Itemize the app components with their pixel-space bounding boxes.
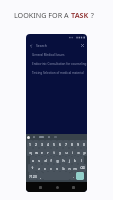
staticText: p [83, 150, 86, 155]
button[interactable]: o [75, 148, 81, 156]
button[interactable]: ⇧ [28, 164, 36, 172]
button[interactable]: b [60, 164, 66, 172]
staticText: y [59, 150, 61, 155]
button[interactable]: 7 [63, 140, 69, 148]
button[interactable]: n [66, 164, 72, 172]
staticText: 6 [59, 142, 61, 147]
button[interactable]: k [72, 156, 78, 164]
button[interactable]: a [30, 156, 36, 164]
button[interactable]: 8 [69, 140, 75, 148]
button[interactable]: 9 [75, 140, 81, 148]
staticText: 2 [35, 142, 37, 147]
staticText: m [73, 166, 77, 171]
staticText: , [40, 174, 41, 179]
button[interactable]: General Medical Issues [26, 50, 87, 59]
staticText: 9 [77, 142, 79, 147]
staticText: h [62, 158, 65, 163]
button[interactable]: 3 [39, 140, 45, 148]
staticText: ⌫ [80, 166, 85, 170]
staticText: Testing Selection of medical material [32, 71, 84, 75]
button[interactable]: v [54, 164, 60, 172]
button[interactable]: f [48, 156, 54, 164]
staticText: j [69, 158, 70, 163]
staticText: g [56, 158, 59, 163]
staticText: s [38, 158, 40, 163]
button[interactable]: Clear [80, 43, 85, 48]
button[interactable]: e [39, 148, 45, 156]
button[interactable]: Back [37, 184, 43, 190]
button[interactable]: c [48, 164, 54, 172]
button[interactable]: Back [28, 43, 34, 49]
button[interactable]: Home [54, 184, 60, 190]
button[interactable]: 6 [57, 140, 63, 148]
staticText: f [50, 158, 52, 163]
button[interactable]: Settings [48, 136, 50, 138]
button[interactable]: z [36, 164, 42, 172]
button[interactable]: ⌫ [78, 164, 86, 172]
button[interactable]: i [69, 148, 75, 156]
button[interactable]: Clipboard [39, 136, 44, 138]
button[interactable]: s [36, 156, 42, 164]
button[interactable]: 2 [33, 140, 39, 148]
button[interactable]: 1 [27, 140, 33, 148]
button[interactable]: g [54, 156, 60, 164]
staticText: d [44, 158, 47, 163]
button[interactable]: p [81, 148, 87, 156]
staticText: o [77, 150, 80, 155]
staticText: q [29, 150, 32, 155]
staticText: l [81, 158, 82, 163]
button[interactable]: x [42, 164, 48, 172]
button[interactable]: Endocrinic Consultation for counseling [26, 59, 87, 68]
button[interactable]: Recents [70, 184, 76, 190]
staticText: w [35, 150, 38, 155]
staticText: 0 [83, 142, 85, 147]
button[interactable]: r [45, 148, 51, 156]
staticText: n [68, 166, 71, 171]
button[interactable]: Assistant [27, 136, 30, 139]
staticText: 8 [71, 142, 73, 147]
staticText: 3 [41, 142, 43, 147]
button[interactable]: 0 [81, 140, 87, 148]
button[interactable]: Stickers [33, 136, 35, 138]
button[interactable]: u [63, 148, 69, 156]
staticText: a [32, 158, 34, 163]
staticText: u [65, 150, 68, 155]
button[interactable]: ?123 [29, 172, 37, 180]
staticText: 4 [47, 142, 49, 147]
button[interactable]: t [51, 148, 57, 156]
staticText: General Medical Issues [32, 53, 65, 57]
button[interactable]: d [42, 156, 48, 164]
staticText: LOOKING FOR A [14, 10, 71, 20]
button[interactable]: l [78, 156, 84, 164]
staticText: ? [89, 10, 94, 20]
staticText: b [62, 166, 65, 171]
staticText: 7 [65, 142, 67, 147]
staticText: i [72, 150, 73, 155]
button[interactable]: Enter [76, 172, 84, 180]
button[interactable]: , [37, 172, 43, 180]
staticText: Endocrinic Consultation for counseling [32, 62, 87, 66]
staticText: 1 [29, 142, 31, 147]
staticText: e [41, 150, 43, 155]
button[interactable]: m [72, 164, 78, 172]
staticText: t [53, 150, 55, 155]
button[interactable]: y [57, 148, 63, 156]
staticText: TASK [71, 10, 89, 20]
staticText: r [47, 150, 49, 155]
staticText: Search [36, 43, 47, 48]
button[interactable]: 4 [45, 140, 51, 148]
button[interactable]: 5 [51, 140, 57, 148]
staticText: k [74, 158, 76, 163]
button[interactable]: w [33, 148, 39, 156]
staticText: ⇧ [31, 166, 34, 170]
button[interactable]: h [60, 156, 66, 164]
button[interactable]: j [66, 156, 72, 164]
staticText: . [73, 174, 74, 179]
button[interactable]: . [70, 172, 76, 180]
button[interactable]: More [54, 136, 57, 138]
staticText: c [50, 166, 52, 171]
button[interactable]: Testing Selection of medical material [26, 68, 87, 77]
staticText: 5 [53, 142, 55, 147]
button[interactable]: q [27, 148, 33, 156]
